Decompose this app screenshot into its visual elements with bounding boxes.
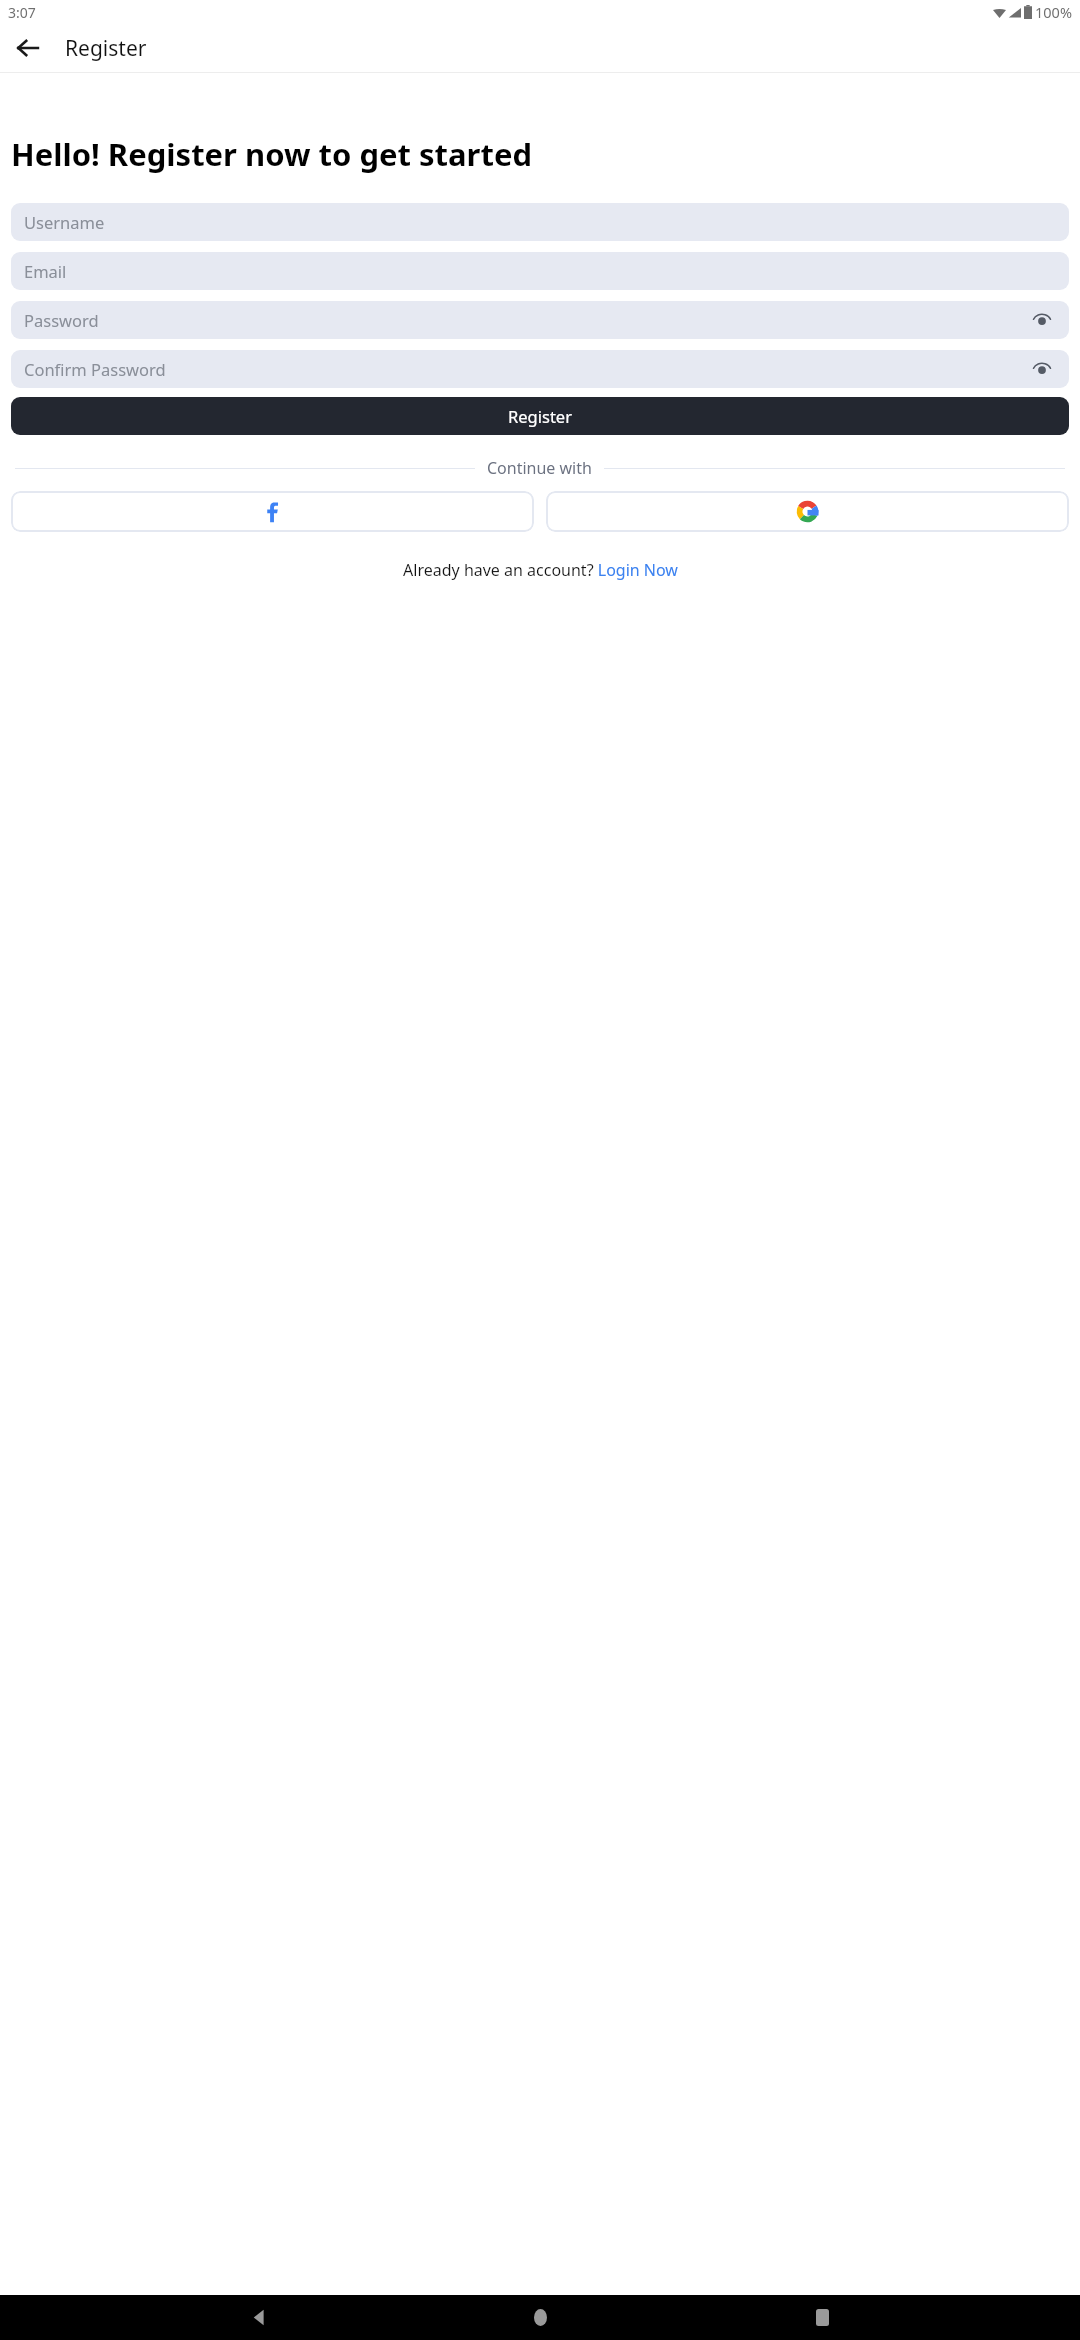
button[interactable]: Continue with Facebook [11, 491, 534, 532]
button[interactable]: Back [8, 28, 48, 68]
staticText: Password [24, 309, 99, 331]
button[interactable]: Back [234, 2295, 282, 2340]
button[interactable]: Confirm Password [11, 350, 1069, 388]
button[interactable]: Toggle password visibility [1028, 355, 1056, 383]
staticText: Email [24, 260, 67, 282]
staticText: Username [24, 211, 105, 233]
staticText: Confirm Password [24, 358, 166, 380]
button[interactable]: Recent apps [798, 2295, 846, 2340]
button[interactable]: Toggle password visibility [1028, 306, 1056, 334]
button[interactable]: Already have an account? Login Now [403, 559, 678, 581]
button[interactable]: Continue with Google [546, 491, 1069, 532]
staticText: Register [508, 405, 572, 427]
staticText: Hello! Register now to get started [11, 133, 1069, 175]
button[interactable]: Email [11, 252, 1069, 290]
staticText: 100% [1035, 2, 1072, 22]
staticText: Register [65, 34, 147, 63]
button[interactable]: Home [516, 2295, 564, 2340]
button[interactable]: Password [11, 301, 1069, 339]
button[interactable]: Register [11, 397, 1069, 435]
staticText: Continue with [487, 457, 592, 479]
button[interactable]: Username [11, 203, 1069, 241]
staticText: 3:07 [8, 3, 36, 22]
